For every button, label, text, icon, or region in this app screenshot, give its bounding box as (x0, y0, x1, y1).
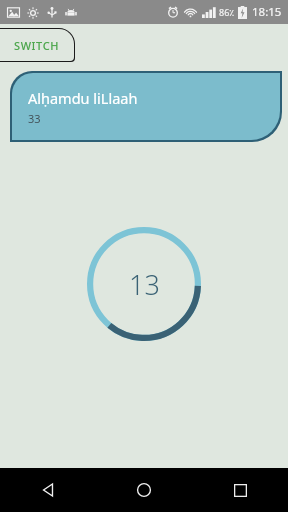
staticText: SWITCH (14, 38, 60, 53)
staticText: 18:15 (252, 4, 282, 20)
button[interactable]: Back (0, 468, 96, 512)
staticText: 33 (28, 111, 41, 126)
button[interactable]: Recent apps (192, 468, 288, 512)
staticText: 86٪ (219, 6, 235, 18)
button[interactable]: Home (96, 468, 192, 512)
button[interactable]: SWITCH (0, 29, 74, 61)
button[interactable]: Alḥamdu liLlaah (12, 73, 280, 140)
staticText: Alḥamdu liLlaah (28, 88, 138, 108)
button[interactable]: Counter (87, 227, 201, 341)
staticText: 13 (129, 266, 160, 303)
